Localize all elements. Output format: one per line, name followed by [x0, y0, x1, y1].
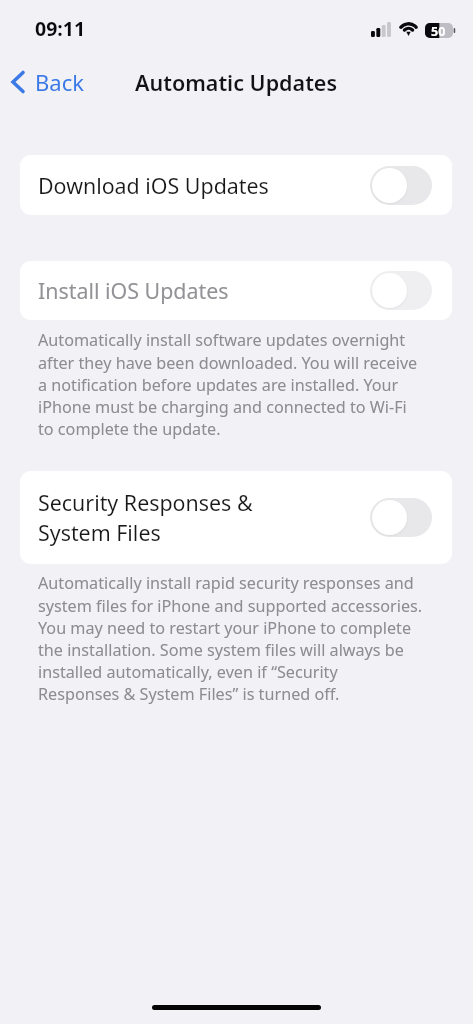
button[interactable]: Toggle — [370, 271, 432, 310]
staticText: 50 — [431, 23, 446, 38]
staticText: Automatically install software updates o… — [38, 329, 423, 439]
staticText: Install iOS Updates — [38, 276, 370, 305]
staticText: Automatically install rapid security res… — [38, 572, 423, 704]
button[interactable]: Security Responses & System Files — [20, 471, 452, 564]
button[interactable]: Back — [0, 62, 94, 102]
other: Battery 50 percent — [425, 23, 456, 38]
staticText: Back — [35, 67, 84, 97]
button[interactable]: Toggle — [370, 166, 432, 205]
button[interactable]: Install iOS Updates — [20, 261, 452, 320]
staticText: 09:11 — [35, 15, 86, 42]
staticText: Security Responses & System Files — [38, 488, 370, 547]
button[interactable]: Download iOS Updates — [20, 155, 452, 215]
button[interactable]: Toggle — [370, 498, 432, 537]
staticText: Automatic Updates — [135, 68, 338, 97]
staticText: Download iOS Updates — [38, 171, 370, 200]
